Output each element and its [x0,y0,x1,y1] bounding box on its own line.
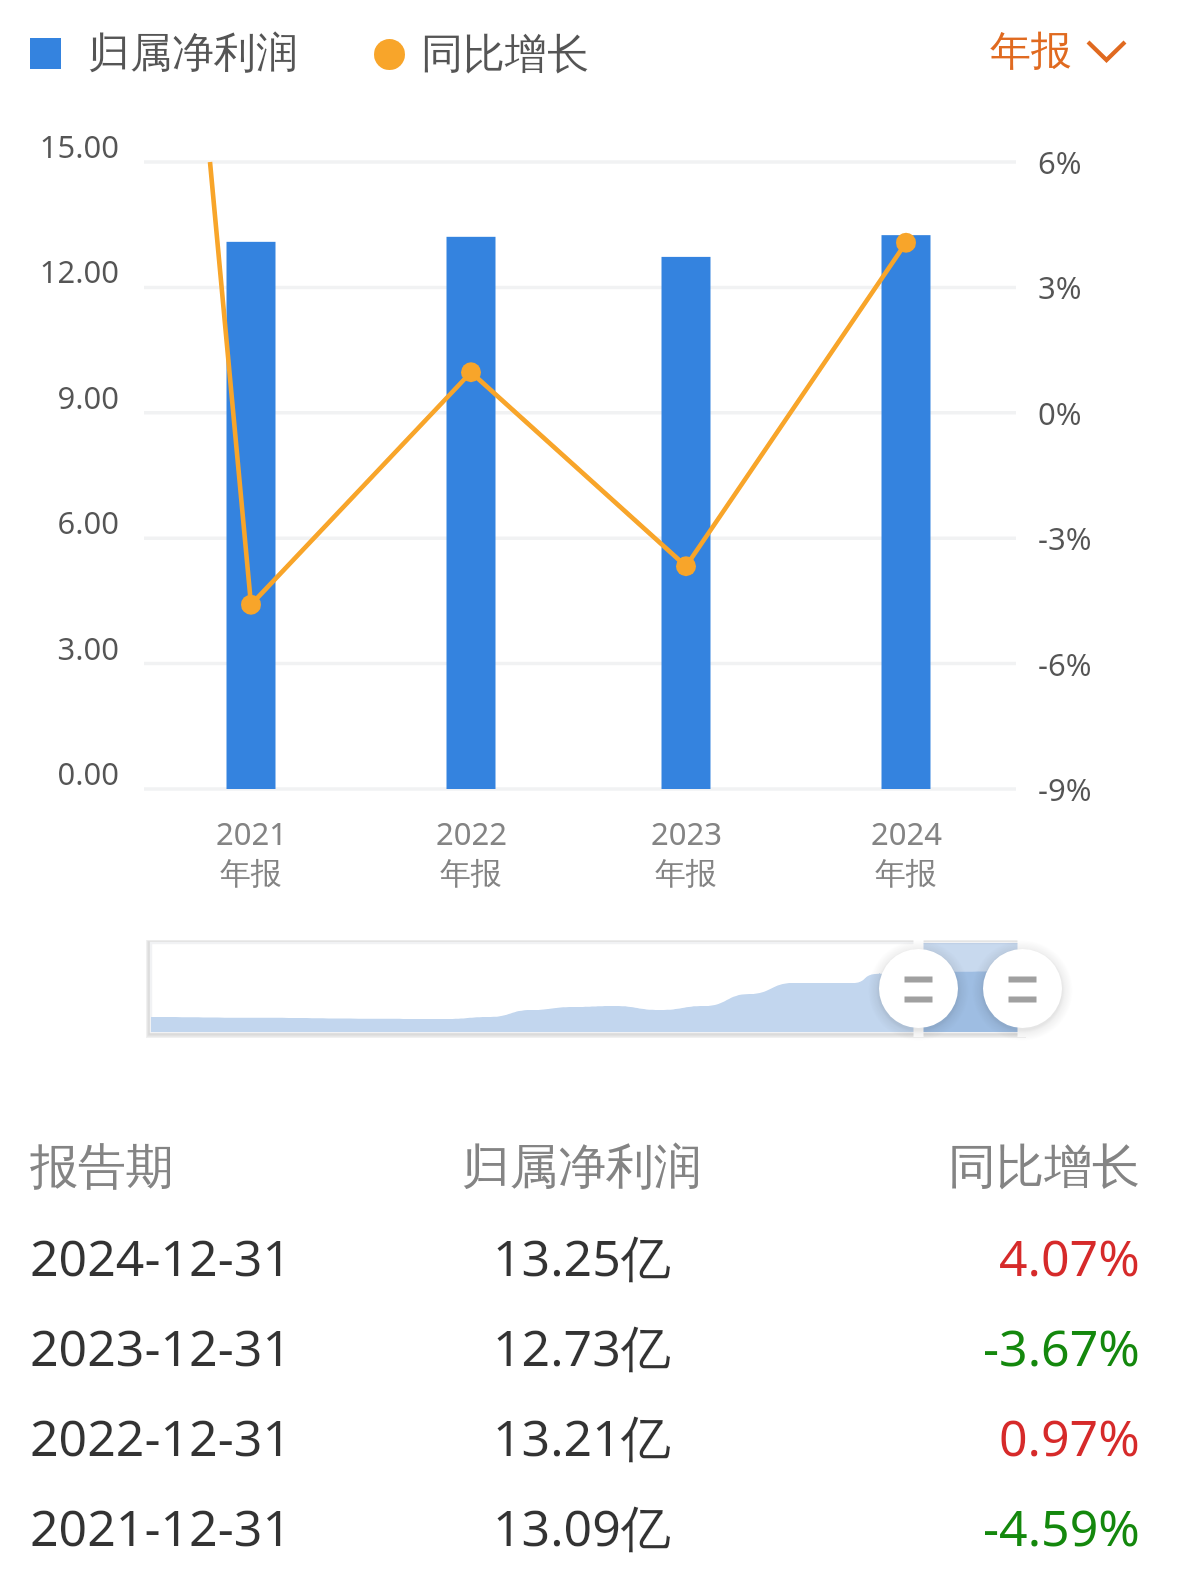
staticText: 12.00 [39,250,119,292]
staticText: 年报 [990,26,1072,78]
staticText: 2024 [871,812,942,854]
staticText: 2023 [651,812,722,854]
button[interactable]: Chart range selector [151,943,1021,1032]
button[interactable]: 同比增长 [374,28,589,81]
staticText: -9% [1038,768,1092,810]
staticText: 0% [1038,392,1082,434]
button[interactable]: 2021-12-31 [0,1489,1179,1565]
staticText: 年报 [440,854,502,893]
staticText: -6% [1038,643,1092,685]
staticText: 4.07% [999,1223,1140,1291]
staticText: 年报 [655,854,717,893]
staticText: 6.00 [57,501,119,543]
staticText: -3.67% [983,1313,1140,1381]
staticText: 2021-12-31 [30,1493,291,1561]
staticText: 0.97% [999,1403,1140,1471]
staticText: -3% [1038,517,1092,559]
button[interactable]: 2024-12-31 [0,1219,1179,1295]
staticText: 报告期 [30,1137,174,1197]
staticText: 归属净利润 [462,1137,702,1197]
staticText: 2022 [436,812,507,854]
staticText: 3% [1038,266,1082,308]
button[interactable]: Range handle [967,933,1078,1044]
staticText: 归属净利润 [88,27,298,80]
staticText: 同比增长 [421,28,589,81]
staticText: -4.59% [983,1493,1140,1561]
staticText: 3.00 [57,627,119,669]
button[interactable]: 归属净利润 [30,27,298,80]
staticText: 9.00 [57,376,119,418]
staticText: 2024-12-31 [30,1223,291,1291]
staticText: 6% [1038,141,1082,183]
staticText: 2023-12-31 [30,1313,291,1381]
staticText: 年报 [875,854,937,893]
staticText: 2022-12-31 [30,1403,291,1471]
staticText: 同比增长 [948,1137,1140,1197]
button[interactable]: 2022-12-31 [0,1399,1179,1475]
staticText: 13.21亿 [493,1403,671,1471]
staticText: 2021 [216,812,287,854]
staticText: 13.25亿 [493,1223,671,1291]
button[interactable]: 年报 [990,26,1127,78]
staticText: 13.09亿 [493,1493,671,1561]
staticText: 12.73亿 [493,1313,671,1381]
button[interactable]: 2023-12-31 [0,1309,1179,1385]
staticText: 年报 [220,854,282,893]
staticText: 15.00 [39,125,119,167]
button[interactable]: Range handle [863,933,974,1044]
staticText: 0.00 [57,752,119,794]
